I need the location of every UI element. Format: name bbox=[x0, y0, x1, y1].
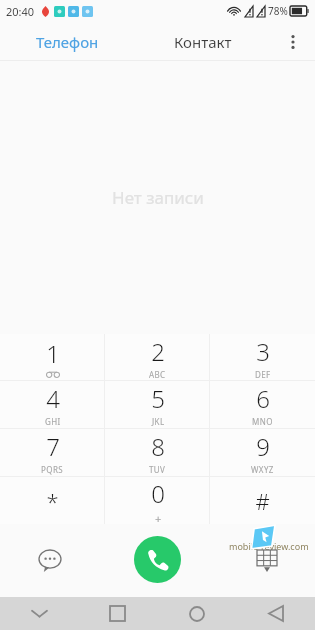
staticText: TUV bbox=[149, 464, 166, 475]
staticText: Контакт bbox=[174, 32, 232, 52]
staticText: 6 bbox=[256, 382, 270, 415]
staticText: 20:40 bbox=[6, 4, 35, 19]
staticText: PQRS bbox=[41, 464, 64, 475]
button[interactable]: * bbox=[0, 477, 105, 524]
staticText: MNO bbox=[252, 416, 273, 427]
button[interactable]: 8 bbox=[105, 429, 210, 476]
button[interactable]: Телефон bbox=[0, 22, 135, 61]
staticText: 3 bbox=[256, 335, 270, 368]
staticText: 9 bbox=[256, 430, 270, 463]
button[interactable]: Home bbox=[157, 597, 236, 630]
button[interactable]: 3 bbox=[210, 334, 315, 380]
staticText: ABC bbox=[149, 369, 166, 380]
staticText: mobile-review.com bbox=[229, 540, 309, 552]
button[interactable]: More options bbox=[271, 22, 315, 61]
button[interactable]: 1 bbox=[0, 334, 105, 380]
staticText: 1 bbox=[46, 337, 60, 370]
button[interactable]: 9 bbox=[210, 429, 315, 476]
button[interactable]: 6 bbox=[210, 381, 315, 428]
button[interactable]: 5 bbox=[105, 381, 210, 428]
staticText: # bbox=[255, 486, 270, 516]
button[interactable]: Hide keypad bbox=[247, 541, 287, 581]
button[interactable]: 7 bbox=[0, 429, 105, 476]
staticText: 0 bbox=[151, 477, 165, 510]
staticText: 78% bbox=[268, 4, 288, 18]
button[interactable]: Call bbox=[134, 536, 181, 583]
staticText: 5 bbox=[151, 382, 165, 415]
button[interactable]: Контакт bbox=[135, 22, 271, 61]
button[interactable]: Hide navigation bar bbox=[0, 597, 78, 630]
button[interactable]: Messages bbox=[30, 541, 70, 581]
staticText: 8 bbox=[151, 430, 165, 463]
button[interactable]: 4 bbox=[0, 381, 105, 428]
staticText: GHI bbox=[45, 416, 61, 427]
staticText: * bbox=[46, 486, 59, 516]
button[interactable]: # bbox=[210, 477, 315, 524]
staticText: + bbox=[155, 511, 162, 524]
staticText: 2 bbox=[151, 335, 165, 368]
staticText: JKL bbox=[152, 416, 165, 427]
staticText: Телефон bbox=[36, 32, 99, 52]
button[interactable]: Recents bbox=[78, 597, 157, 630]
staticText: WXYZ bbox=[251, 464, 274, 475]
staticText: 7 bbox=[46, 430, 60, 463]
staticText: DEF bbox=[255, 369, 271, 380]
staticText: 4 bbox=[46, 382, 60, 415]
button[interactable]: 2 bbox=[105, 334, 210, 380]
button[interactable]: 0 bbox=[105, 477, 210, 524]
button[interactable]: Back bbox=[236, 597, 315, 630]
staticText: Нет записи bbox=[112, 186, 204, 209]
